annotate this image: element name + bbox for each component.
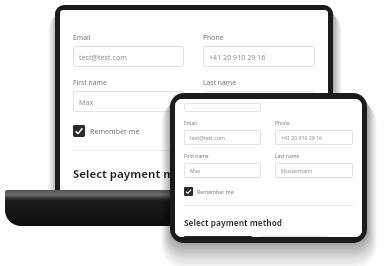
staticText: Remember me xyxy=(90,126,140,136)
staticText: First name xyxy=(73,78,107,87)
button[interactable]: Pay on site xyxy=(73,192,167,195)
button[interactable]: Mustermann xyxy=(275,163,353,178)
staticText: First name xyxy=(184,153,209,160)
button[interactable]: Mustermann xyxy=(203,91,315,112)
button[interactable]: test@test.com xyxy=(184,130,261,145)
button[interactable]: Credit Card xyxy=(178,192,272,195)
staticText: Max xyxy=(190,167,201,174)
staticText: +41 20 910 29 16 xyxy=(209,52,266,62)
staticText: Pay on site xyxy=(81,192,125,195)
staticText: +41 20 910 29 16 xyxy=(281,134,323,141)
staticText: Remember me xyxy=(197,188,234,195)
staticText: Email xyxy=(73,33,91,42)
staticText: Credit Card xyxy=(186,192,232,195)
button[interactable]: Max xyxy=(184,163,261,178)
staticText: Select payment method xyxy=(73,166,208,181)
staticText: test@test.com xyxy=(190,134,225,141)
button[interactable]: Remember me xyxy=(184,187,234,196)
staticText: Mustermann xyxy=(281,167,313,174)
button[interactable]: Pay on site xyxy=(184,236,252,237)
button[interactable]: test@test.com xyxy=(73,46,184,67)
button[interactable]: Remember me xyxy=(73,125,140,137)
staticText: Select payment method xyxy=(184,217,283,228)
staticText: Last name xyxy=(275,153,300,160)
staticText: Last name xyxy=(203,78,237,87)
button[interactable]: +41 20 910 29 16 xyxy=(275,130,353,145)
button[interactable]: Max xyxy=(73,91,184,112)
staticText: Phone xyxy=(275,120,290,127)
staticText: Email xyxy=(184,120,197,127)
staticText: Phone xyxy=(203,33,224,42)
staticText: test@test.com xyxy=(79,52,127,62)
staticText: Max xyxy=(79,97,94,107)
button[interactable]: +41 20 910 29 16 xyxy=(203,46,315,67)
staticText: Mustermann xyxy=(209,97,253,107)
